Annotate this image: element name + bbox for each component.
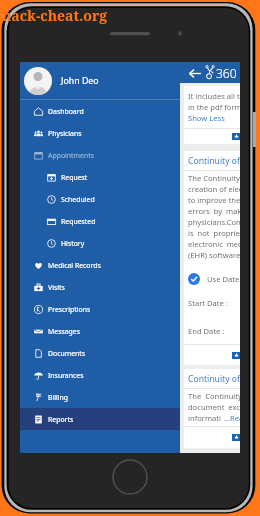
staticText: document exchange standard that: [188, 402, 240, 412]
staticText: electronic medical record system: [188, 239, 240, 249]
staticText: Reports: [48, 415, 74, 424]
button[interactable]: Download: [232, 352, 240, 359]
other: Logo: [205, 66, 217, 80]
staticText: Physicians: [48, 129, 82, 138]
button[interactable]: Download: [232, 434, 240, 441]
button[interactable]: Prescriptions: [20, 298, 180, 320]
button[interactable]: Visits: [20, 276, 180, 298]
staticText: Messages: [48, 327, 81, 336]
staticText: The Continuity of Care Document is a: [188, 173, 240, 183]
button[interactable]: Insurances: [20, 364, 180, 386]
staticText: Dashboard: [48, 107, 84, 116]
staticText: Billing: [48, 393, 69, 402]
button[interactable]: Appointments: [20, 144, 180, 166]
button[interactable]: Download: [232, 133, 240, 140]
button[interactable]: History: [20, 232, 180, 254]
staticText: Start Date :: [188, 298, 228, 308]
staticText: John Deo: [61, 75, 99, 87]
staticText: The Continuity of Care Record is a: [188, 391, 240, 401]
button[interactable]: Use Date Range: [188, 273, 240, 285]
button[interactable]: ...Read More: [224, 413, 240, 423]
staticText: It includes all the patient records: [188, 91, 240, 101]
staticText: errors by making the records: [188, 206, 240, 216]
staticText: Use Date Range: [207, 274, 240, 284]
staticText: Continuity of Care Record: [188, 373, 240, 385]
button[interactable]: Messages: [20, 320, 180, 342]
button[interactable]: Physicians: [20, 122, 180, 144]
button[interactable]: Dashboard: [20, 100, 180, 122]
staticText: Visits: [48, 283, 65, 292]
button[interactable]: Back: [189, 64, 201, 82]
staticText: End Date :: [188, 326, 225, 336]
staticText: in the pdf format.: [188, 102, 240, 112]
button[interactable]: Documents: [20, 342, 180, 364]
staticText: Prescriptions: [48, 305, 91, 314]
staticText: (EHR) software package used today.: [188, 250, 240, 260]
button[interactable]: John Deo: [20, 62, 180, 99]
button[interactable]: Medical Records: [20, 254, 180, 276]
staticText: Appointments: [48, 151, 94, 160]
button[interactable]: Reports: [20, 408, 180, 430]
button[interactable]: Scheduled: [20, 188, 180, 210]
staticText: creation of electronic records that help: [188, 184, 240, 194]
staticText: History: [61, 239, 85, 248]
staticText: Continuity of Care Document: [188, 155, 240, 167]
staticText: to improve the quality of care and: [188, 195, 240, 205]
button[interactable]: Requested: [20, 210, 180, 232]
button[interactable]: Show Less: [188, 113, 225, 123]
staticText: Requested: [61, 217, 96, 226]
staticText: Request: [61, 173, 88, 182]
staticText: hack-cheat.org: [2, 6, 108, 25]
button[interactable]: Billing: [20, 386, 180, 408]
staticText: Insurances: [48, 371, 84, 380]
staticText: informati: [188, 413, 224, 423]
staticText: physicians.Continuity of Care Document: [188, 217, 240, 227]
staticText: Scheduled: [61, 195, 95, 204]
staticText: Medical Records: [48, 261, 101, 270]
staticText: Documents: [48, 349, 86, 358]
button[interactable]: Request: [20, 166, 180, 188]
staticText: 360: [216, 65, 237, 81]
staticText: is not proprietary to any single: [188, 228, 240, 238]
